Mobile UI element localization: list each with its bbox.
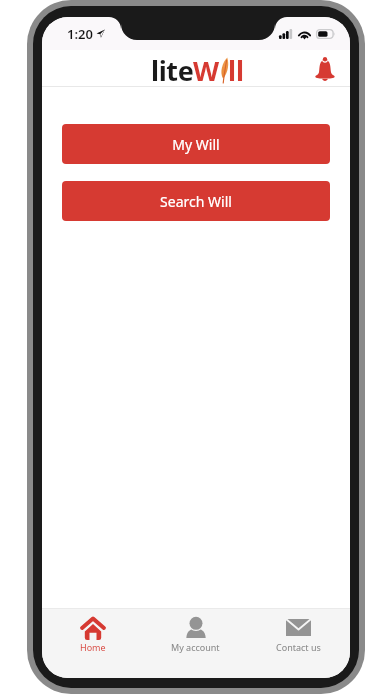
staticText: My Will bbox=[172, 135, 220, 154]
staticText: 1:20 bbox=[67, 25, 93, 43]
staticText: My account bbox=[171, 641, 220, 653]
staticText: Contact us bbox=[276, 641, 321, 653]
staticText: ll bbox=[228, 52, 245, 88]
button[interactable]: My Will bbox=[62, 124, 330, 164]
button[interactable]: Home bbox=[42, 609, 144, 678]
staticText: Home bbox=[80, 641, 106, 653]
staticText: W bbox=[193, 52, 220, 88]
staticText: Search Will bbox=[160, 192, 232, 211]
staticText: lite bbox=[151, 52, 194, 88]
button[interactable]: Notifications bbox=[310, 53, 340, 83]
button[interactable]: Contact us bbox=[247, 609, 350, 678]
button[interactable]: Search Will bbox=[62, 181, 330, 221]
button[interactable]: My account bbox=[144, 609, 247, 678]
